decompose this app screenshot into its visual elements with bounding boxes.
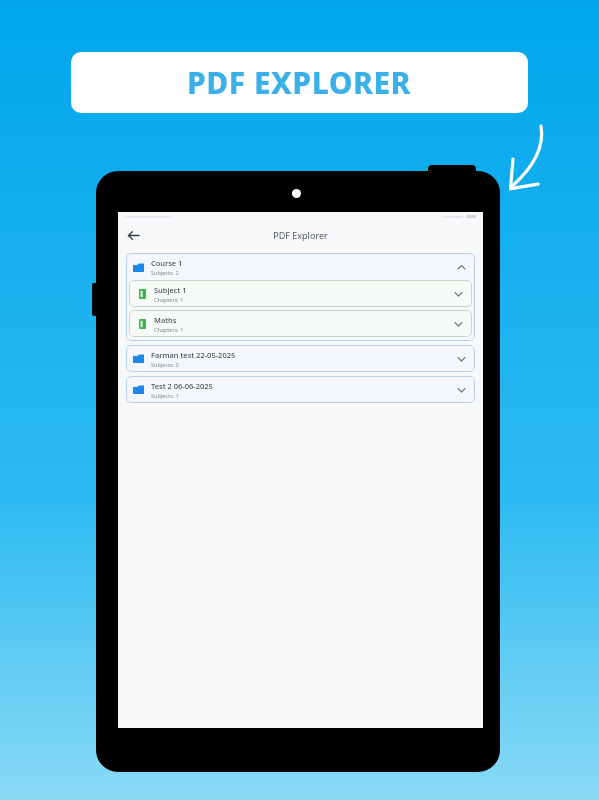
button[interactable]: Expand <box>451 317 465 331</box>
button[interactable]: Subject 1 <box>129 280 472 307</box>
button[interactable]: Maths <box>129 310 472 337</box>
button[interactable]: Back <box>123 225 143 245</box>
button[interactable]: Expand <box>454 383 468 397</box>
staticText: Course 1 <box>151 258 183 268</box>
staticText: Subjects: 1 <box>151 392 179 399</box>
button[interactable]: Collapse <box>454 260 468 274</box>
staticText: Test 2 06-06-2025 <box>151 381 213 391</box>
button[interactable]: Course 1 <box>129 256 472 278</box>
button[interactable]: Expand <box>451 287 465 301</box>
button[interactable]: Expand <box>454 352 468 366</box>
staticText: Maths <box>154 315 177 325</box>
button[interactable]: Test 2 06-06-2025 <box>126 376 475 403</box>
staticText: Farman test 22-05-2025 <box>151 350 236 360</box>
staticText: Subject 1 <box>154 285 187 295</box>
staticText: Chapters: 1 <box>154 296 184 303</box>
staticText: Subjects: 2 <box>151 269 179 276</box>
staticText: Chapters: 1 <box>154 326 184 333</box>
button[interactable]: Farman test 22-05-2025 <box>126 345 475 372</box>
staticText: PDF EXPLORER <box>187 62 412 103</box>
staticText: Subjects: 2 <box>151 361 179 368</box>
button[interactable]: PDF EXPLORER <box>71 52 528 113</box>
staticText: PDF Explorer <box>273 229 328 241</box>
